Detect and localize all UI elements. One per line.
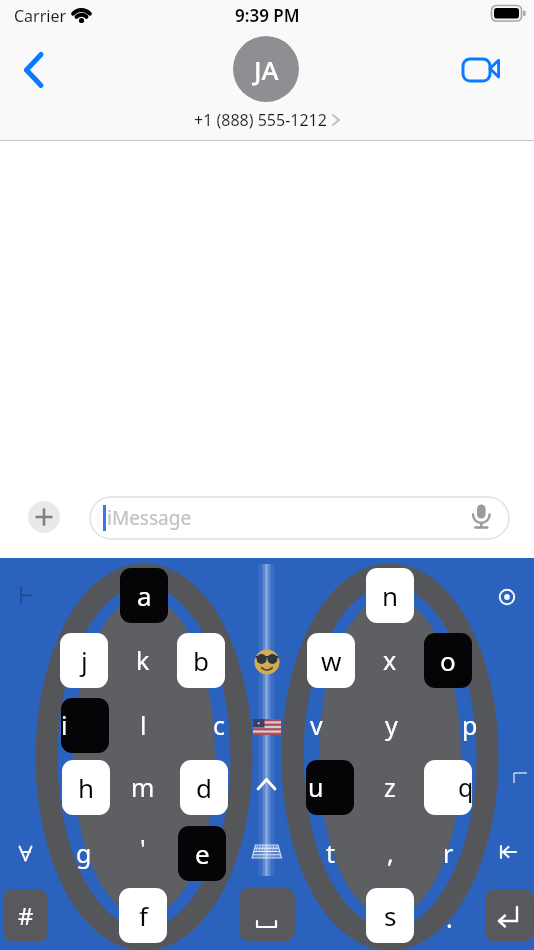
button[interactable] — [458, 52, 506, 88]
staticText: j — [81, 643, 88, 678]
button[interactable]: a — [120, 568, 168, 623]
button[interactable]: j — [60, 633, 108, 688]
button[interactable]: n — [366, 568, 414, 623]
button[interactable]: # — [3, 889, 48, 942]
staticText: Carrier — [14, 5, 67, 27]
staticText: q — [458, 770, 474, 804]
staticText: e — [195, 836, 210, 871]
staticText: z — [384, 770, 396, 804]
button[interactable] — [424, 760, 472, 815]
staticText: r — [443, 836, 454, 870]
staticText: k — [136, 643, 150, 677]
button[interactable] — [28, 501, 60, 533]
staticText: g — [76, 836, 92, 870]
staticText: i — [61, 708, 68, 742]
staticText: y — [385, 708, 398, 742]
staticText: x — [383, 643, 397, 677]
button[interactable]: iMessage — [89, 496, 510, 540]
staticText: t — [326, 836, 336, 870]
staticText: . — [446, 901, 453, 935]
button[interactable]: w — [307, 633, 355, 688]
staticText: o — [440, 643, 456, 678]
button[interactable]: s — [366, 888, 414, 943]
button[interactable]: o — [424, 633, 472, 688]
staticText: , — [387, 836, 394, 870]
staticText: f — [139, 898, 148, 933]
staticText: +1 (888) 555-1212 — [194, 109, 327, 131]
button[interactable]: e — [178, 826, 226, 881]
button[interactable]: d — [180, 760, 228, 815]
staticText: h — [78, 770, 95, 805]
staticText: iMessage — [107, 505, 192, 531]
staticText: b — [193, 643, 209, 678]
staticText: l — [140, 708, 147, 742]
staticText: v — [310, 708, 323, 742]
staticText: JA — [254, 52, 279, 87]
staticText: u — [308, 770, 324, 804]
button[interactable]: b — [177, 633, 225, 688]
staticText: # — [18, 899, 34, 932]
staticText: a — [137, 578, 152, 613]
button[interactable]: JA — [233, 36, 299, 102]
button[interactable] — [239, 887, 295, 942]
button[interactable] — [12, 46, 56, 94]
staticText: c — [213, 708, 226, 742]
staticText: w — [321, 643, 342, 678]
button[interactable] — [61, 698, 109, 753]
staticText: d — [196, 770, 212, 805]
button[interactable]: h — [62, 760, 110, 815]
button[interactable]: +1 (888) 555-1212 — [194, 109, 340, 131]
staticText: ' — [140, 831, 146, 865]
staticText: p — [462, 708, 478, 742]
button[interactable] — [306, 760, 354, 815]
staticText: n — [382, 578, 399, 613]
staticText: s — [384, 898, 397, 933]
button[interactable] — [485, 889, 534, 942]
button[interactable]: f — [119, 888, 167, 943]
staticText: 9:39 PM — [235, 4, 300, 27]
staticText: m — [131, 770, 155, 804]
